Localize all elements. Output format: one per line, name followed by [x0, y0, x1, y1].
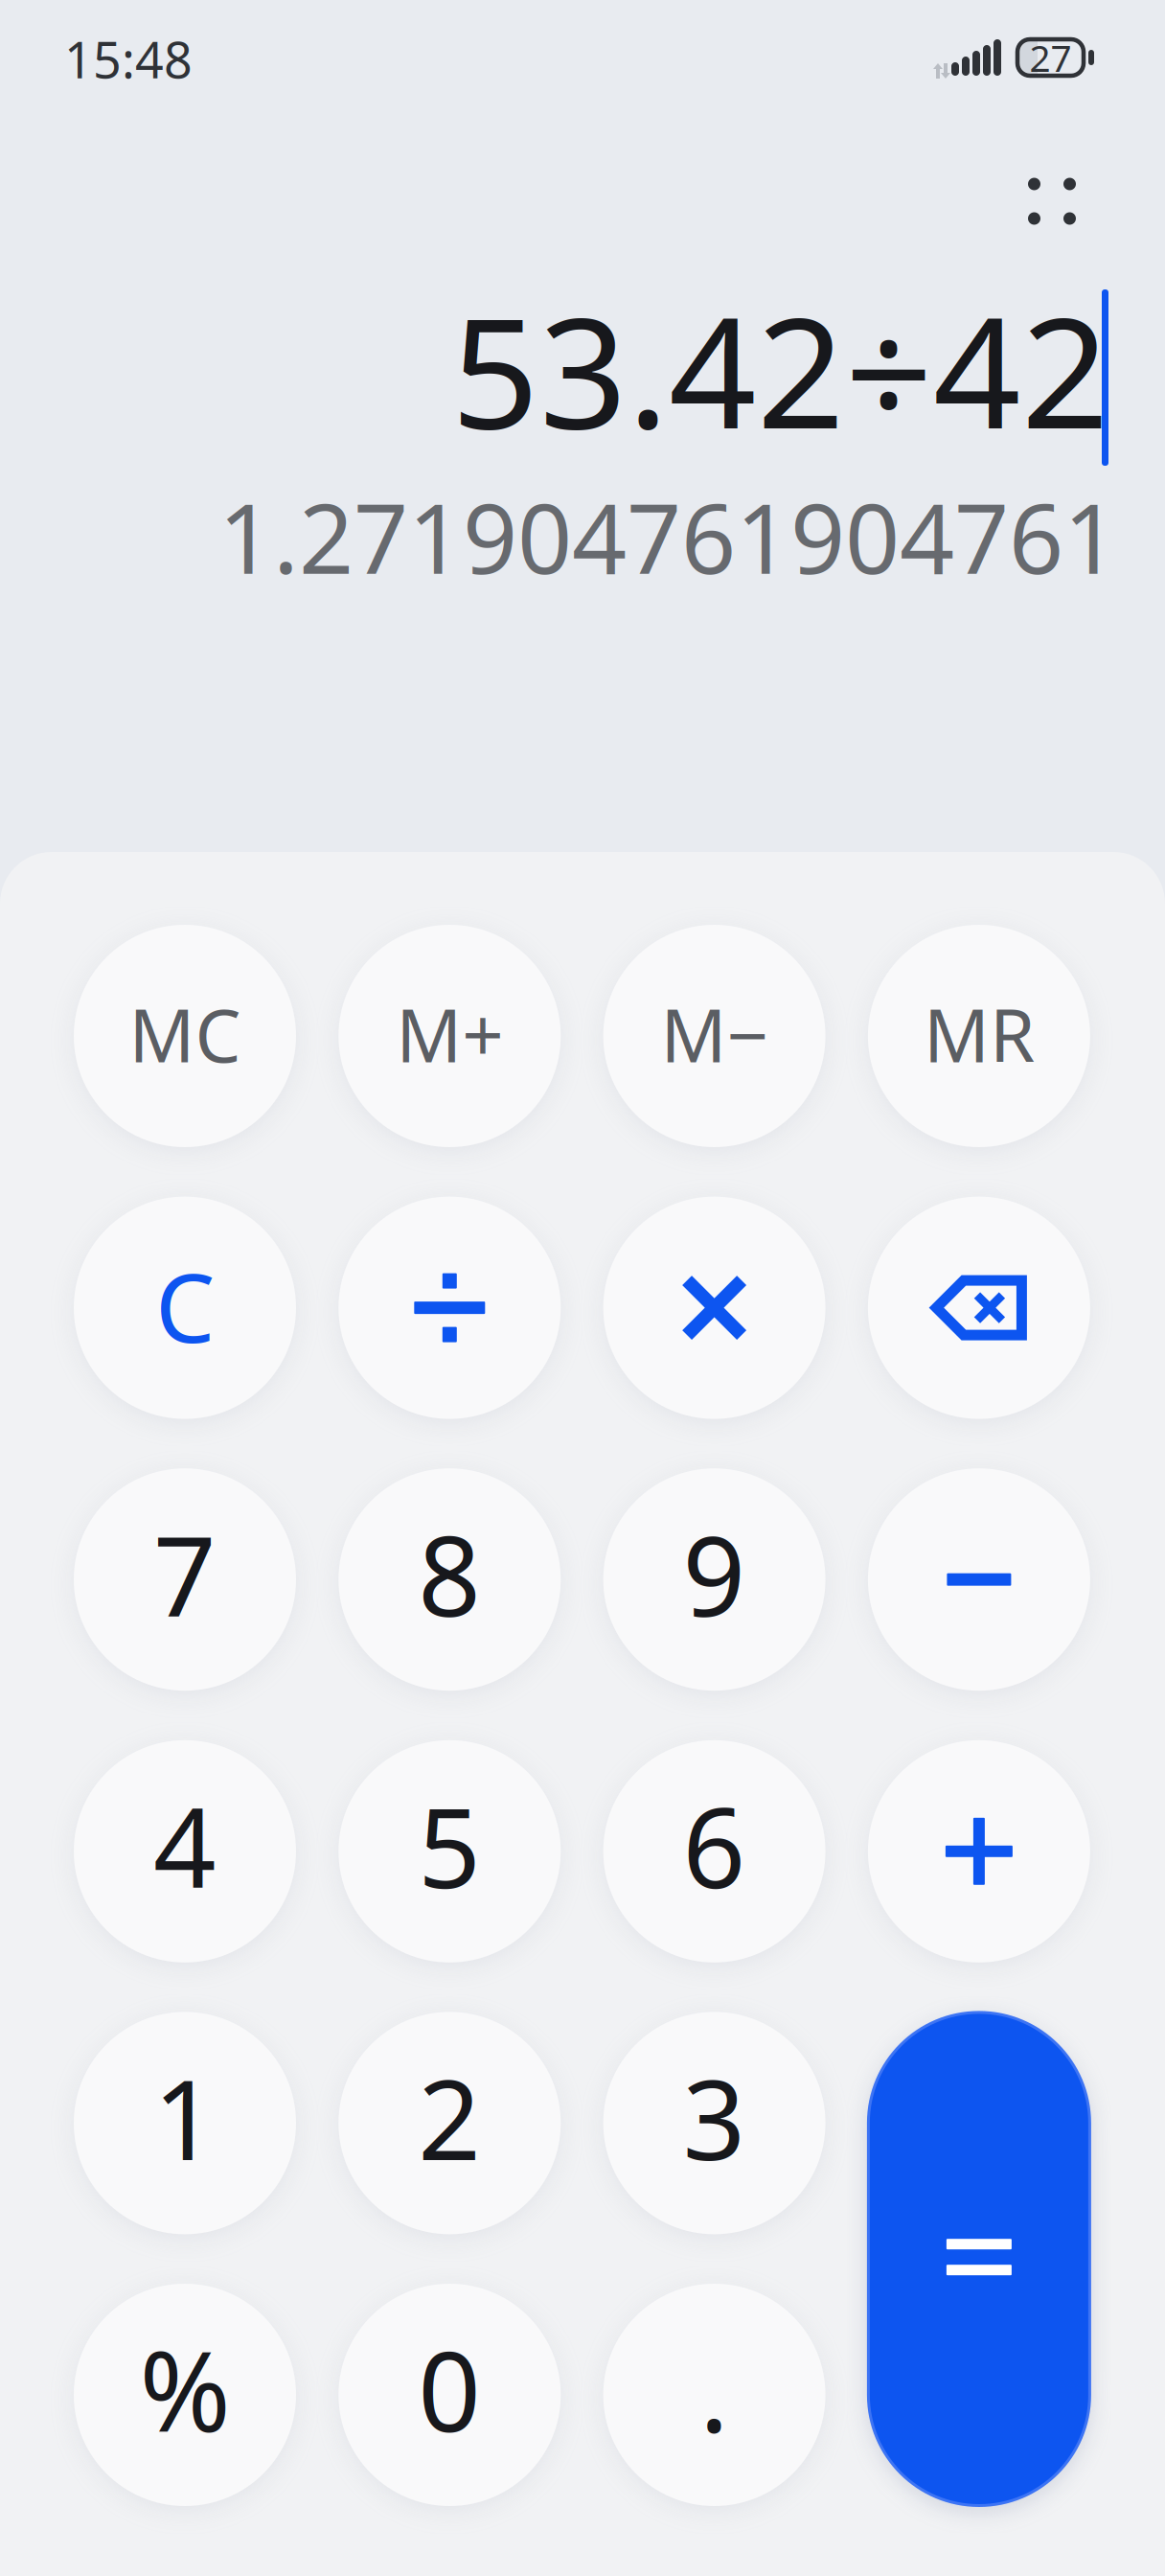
staticText: 9	[683, 1501, 746, 1647]
button[interactable]: .	[603, 2284, 825, 2506]
staticText: 6	[683, 1773, 746, 1919]
staticText: 1.271904761904761	[218, 473, 1118, 600]
button[interactable]: 9	[603, 1468, 825, 1691]
button[interactable]: 7	[74, 1468, 296, 1691]
button[interactable]: M+	[338, 925, 561, 1147]
staticText: M−	[661, 986, 768, 1082]
staticText: MR	[923, 986, 1035, 1082]
staticText: 27	[1029, 33, 1072, 82]
staticText: C	[155, 1243, 215, 1369]
button[interactable]: 6	[603, 1740, 825, 1962]
staticText: 4	[153, 1773, 217, 1919]
staticText: 53.42÷42	[451, 267, 1109, 471]
staticText: 5	[418, 1773, 481, 1919]
button[interactable]: Divide	[338, 1197, 561, 1419]
staticText: 3	[683, 2044, 746, 2190]
staticText: 8	[418, 1501, 481, 1647]
staticText: M+	[396, 986, 503, 1082]
staticText: 2	[418, 2044, 481, 2190]
button[interactable]: 1	[74, 2012, 296, 2234]
button[interactable]: Multiply	[603, 1197, 825, 1419]
staticText: MC	[129, 986, 241, 1082]
button[interactable]: More options	[994, 144, 1109, 259]
button[interactable]: 8	[338, 1468, 561, 1691]
button[interactable]: 4	[74, 1740, 296, 1962]
staticText: 15:48	[64, 26, 193, 92]
button[interactable]: Equals	[868, 2012, 1090, 2506]
button[interactable]: 0	[338, 2284, 561, 2506]
button[interactable]: MC	[74, 925, 296, 1147]
staticText: 7	[153, 1501, 217, 1647]
button[interactable]: %	[74, 2284, 296, 2506]
button[interactable]: 2	[338, 2012, 561, 2234]
button[interactable]: C	[74, 1197, 296, 1419]
button[interactable]: 5	[338, 1740, 561, 1962]
button[interactable]: Backspace	[868, 1197, 1090, 1419]
button[interactable]: Minus	[868, 1468, 1090, 1691]
staticText: %	[139, 2316, 230, 2462]
button[interactable]: 3	[603, 2012, 825, 2234]
button[interactable]: M−	[603, 925, 825, 1147]
button[interactable]: MR	[868, 925, 1090, 1147]
staticText: .	[699, 2316, 729, 2462]
button[interactable]: Plus	[868, 1740, 1090, 1962]
staticText: 1	[153, 2044, 217, 2190]
staticText: 0	[418, 2316, 481, 2462]
